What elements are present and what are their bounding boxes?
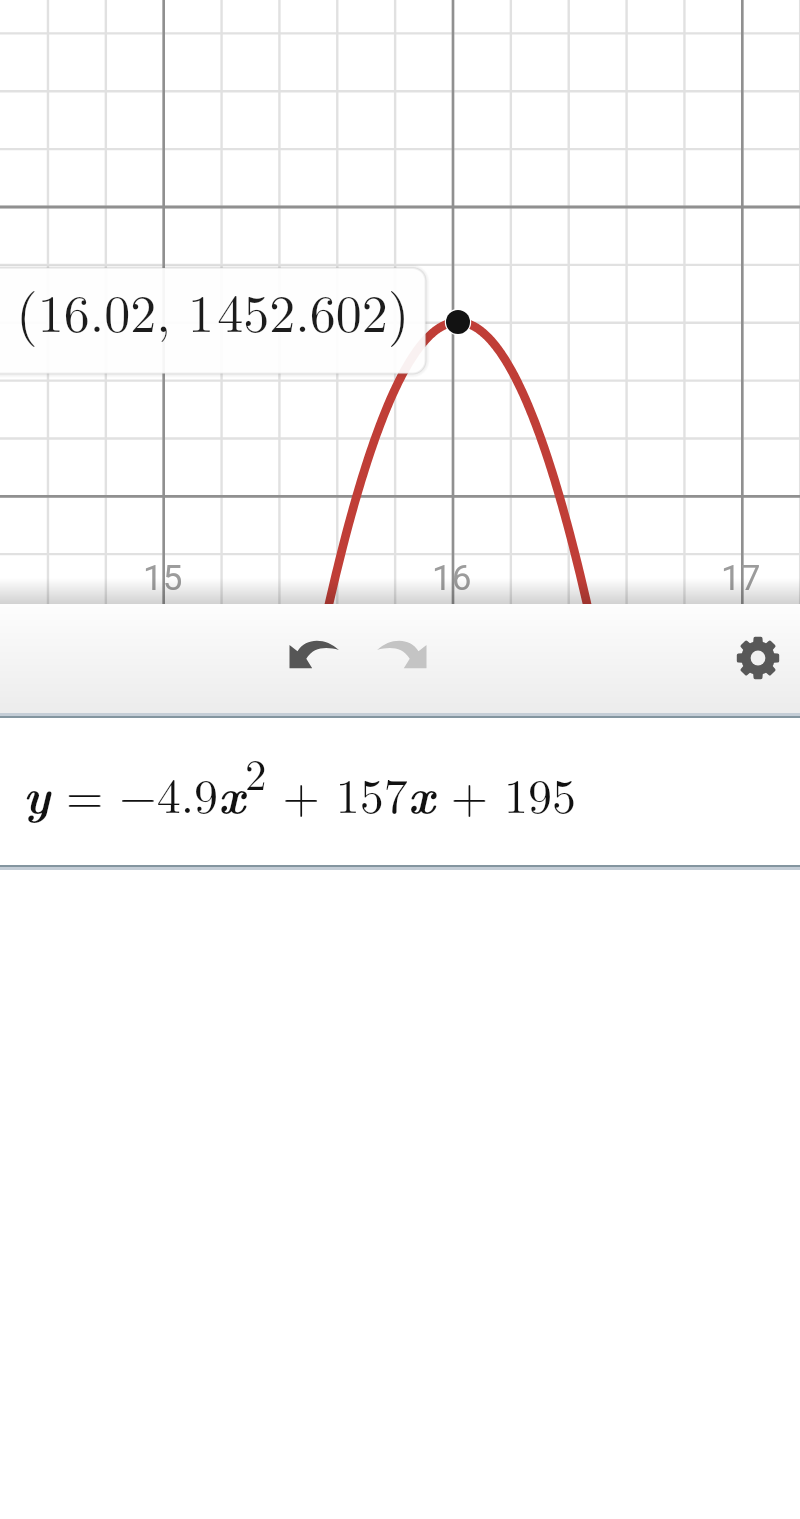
button[interactable]: y = −4.9x2 + 157x + 195 [0, 718, 800, 865]
button[interactable]: Undo [273, 621, 357, 689]
staticText: (16.02, 1 452.602) [16, 270, 410, 349]
button[interactable]: Settings [724, 624, 792, 692]
staticText: 16 [432, 558, 472, 599]
staticText: 15 [143, 558, 183, 599]
staticText: 17 [721, 558, 761, 599]
button[interactable]: Redo [359, 621, 443, 689]
staticText: y = −4.9x2 + 157x + 195 [23, 742, 576, 827]
